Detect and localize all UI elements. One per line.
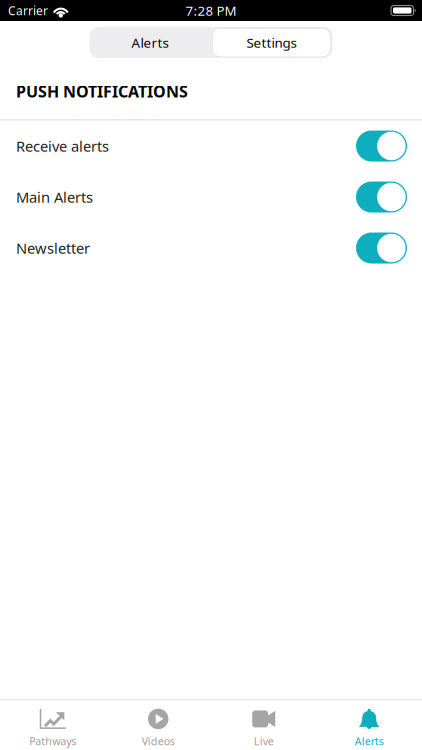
staticText: Newsletter (16, 238, 90, 258)
button[interactable]: Alerts (316, 700, 422, 750)
button[interactable]: Pathways (0, 700, 105, 750)
staticText: Settings (246, 34, 296, 51)
button[interactable]: Videos (105, 700, 211, 750)
button[interactable]: Settings (210, 27, 332, 58)
staticText: Videos (142, 734, 175, 748)
button[interactable]: Live (211, 700, 316, 750)
button[interactable]: Newsletter (0, 222, 422, 273)
staticText: Alerts (355, 734, 384, 748)
staticText: Live (254, 734, 274, 748)
staticText: Receive alerts (16, 136, 109, 156)
staticText: Alerts (131, 34, 168, 51)
button[interactable]: Receive alerts (0, 120, 422, 171)
button[interactable]: Main Alerts (0, 171, 422, 222)
staticText: Pathways (29, 734, 76, 748)
staticText: PUSH NOTIFICATIONS (16, 81, 188, 102)
staticText: 7:28 PM (185, 2, 236, 19)
button[interactable]: Alerts (89, 27, 210, 58)
staticText: Main Alerts (16, 187, 93, 207)
staticText: Carrier (8, 2, 48, 18)
